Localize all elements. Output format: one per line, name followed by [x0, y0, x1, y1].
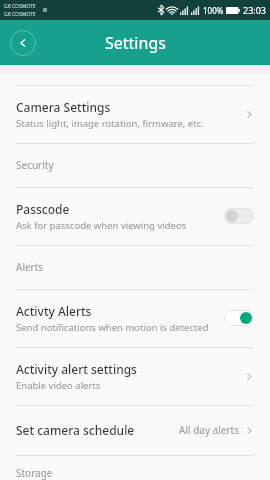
staticText: Activty Alerts [16, 303, 92, 319]
button[interactable]: Activity alert settings [0, 358, 270, 394]
button[interactable]: Toggle off [224, 208, 254, 224]
staticText: GR COSMOTE [4, 11, 36, 18]
button[interactable]: Camera Settings [0, 96, 270, 132]
staticText: 23:03 [243, 4, 267, 16]
button[interactable]: Passcode [0, 198, 270, 234]
button[interactable]: Toggle on [224, 310, 254, 326]
staticText: Enable video alerts [16, 379, 101, 392]
staticText: GR COSMOTE [4, 3, 36, 10]
staticText: Ask for passcode when viewing videos [16, 219, 187, 232]
button[interactable]: Back [10, 30, 36, 56]
staticText: 100% [203, 5, 224, 16]
staticText: Alerts [16, 260, 44, 274]
staticText: Storage [16, 466, 53, 480]
staticText: Activity alert settings [16, 361, 137, 377]
staticText: Security [16, 158, 54, 172]
button[interactable]: Activty Alerts [0, 300, 270, 336]
button[interactable]: Set camera schedule [0, 416, 270, 444]
staticText: Passcode [16, 201, 70, 217]
staticText: Status light, image rotation, firmware, … [16, 117, 204, 130]
staticText: Settings [105, 32, 166, 54]
staticText: Send notifications when motion is detect… [16, 321, 209, 334]
staticText: All day alerts [179, 423, 239, 437]
staticText: Set camera schedule [16, 422, 135, 438]
staticText: Camera Settings [16, 99, 111, 115]
